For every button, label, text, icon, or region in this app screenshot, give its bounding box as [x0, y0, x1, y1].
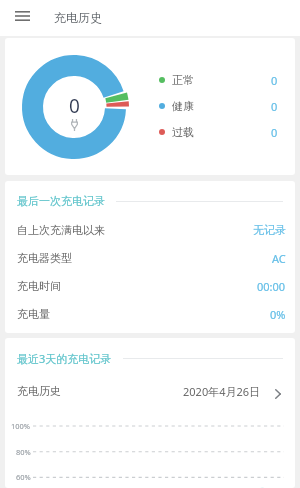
staticText: 过载 — [172, 125, 194, 139]
staticText: 最后一次充电记录 — [17, 194, 105, 208]
staticText: 60% — [16, 472, 31, 482]
button[interactable]: 充电器类型 — [5, 244, 295, 272]
button[interactable]: 自上次充满电以来 — [5, 216, 295, 244]
staticText: 0 — [69, 93, 80, 119]
staticText: 无记录 — [253, 223, 286, 237]
staticText: 00:00 — [257, 279, 286, 294]
staticText: AC — [272, 251, 286, 266]
staticText: 最近3天的充电记录 — [17, 351, 112, 366]
staticText: 0 — [271, 125, 278, 140]
staticText: 0 — [271, 99, 278, 114]
staticText: 充电历史 — [54, 10, 102, 25]
staticText: 正常 — [172, 73, 194, 87]
staticText: 自上次充满电以来 — [17, 223, 105, 237]
staticText: 充电历史 — [17, 384, 61, 398]
button[interactable]: 充电时间 — [5, 272, 295, 300]
button[interactable]: Menu — [2, 0, 41, 32]
staticText: 充电时间 — [17, 279, 61, 293]
button[interactable]: 充电量 — [5, 300, 295, 328]
staticText: 100% — [11, 421, 31, 431]
staticText: 充电量 — [17, 307, 50, 321]
staticText: 2020年4月26日 — [183, 384, 261, 399]
staticText: 健康 — [172, 99, 194, 113]
staticText: 80% — [16, 447, 31, 457]
staticText: 充电器类型 — [17, 251, 72, 265]
button[interactable]: 充电历史 — [5, 375, 295, 407]
staticText: 0 — [271, 73, 278, 88]
staticText: 0% — [270, 307, 286, 322]
